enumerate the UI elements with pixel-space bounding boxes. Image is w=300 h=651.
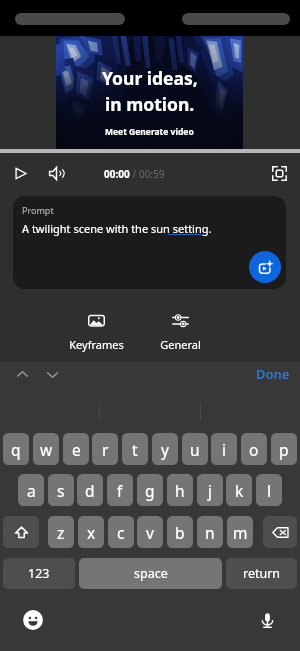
button[interactable]: Prompt [13, 196, 286, 289]
staticText: f [117, 480, 123, 501]
staticText: p [279, 439, 289, 460]
staticText: Keyframes [69, 337, 124, 352]
staticText: n [205, 522, 215, 543]
staticText: space [134, 565, 168, 582]
staticText: Done [256, 365, 290, 383]
button[interactable]: Done [253, 362, 293, 386]
staticText: 123 [28, 565, 50, 582]
staticText: b [175, 522, 185, 543]
button[interactable]: a [18, 474, 44, 506]
button[interactable]: Backspace [263, 516, 297, 548]
staticText: r [102, 439, 109, 460]
staticText: in motion. [105, 92, 195, 116]
staticText: Your ideas, [102, 66, 198, 90]
staticText: l [267, 480, 271, 501]
button[interactable]: Volume [42, 159, 70, 187]
button[interactable]: Emoji [19, 606, 47, 634]
button[interactable]: space [79, 558, 222, 589]
button[interactable]: b [167, 516, 193, 548]
button[interactable]: h [167, 474, 193, 506]
button[interactable]: Fullscreen [265, 159, 293, 187]
staticText: h [175, 480, 185, 501]
staticText: return [243, 565, 281, 582]
staticText: c [117, 522, 125, 543]
button[interactable]: General [143, 306, 218, 354]
staticText: / 00:59 [130, 167, 165, 181]
staticText: d [85, 480, 95, 501]
staticText: General [160, 337, 201, 352]
button[interactable]: Shift [3, 516, 39, 548]
staticText: v [146, 522, 154, 543]
button[interactable]: z [48, 516, 74, 548]
button[interactable]: Play [6, 159, 34, 187]
button[interactable]: w [33, 433, 59, 465]
button[interactable]: k [226, 474, 252, 506]
button[interactable]: c [108, 516, 134, 548]
staticText: q [11, 439, 21, 460]
button[interactable]: q [3, 433, 29, 465]
staticText: Prompt [22, 204, 54, 216]
staticText: o [249, 439, 259, 460]
button[interactable]: m [227, 516, 253, 548]
button[interactable]: Voice input [253, 606, 281, 634]
staticText: g [145, 480, 155, 501]
button[interactable]: Keyframes [56, 306, 137, 354]
staticText: j [208, 480, 212, 501]
button[interactable]: n [197, 516, 223, 548]
staticText: y [161, 439, 169, 460]
button[interactable]: x [78, 516, 104, 548]
button[interactable]: i [211, 433, 237, 465]
button[interactable]: y [152, 433, 178, 465]
staticText: z [57, 522, 65, 543]
button[interactable]: Previous field [8, 362, 36, 386]
staticText: u [190, 439, 200, 460]
button[interactable]: o [241, 433, 267, 465]
button[interactable]: 123 [3, 558, 75, 589]
button[interactable]: d [77, 474, 103, 506]
staticText: m [233, 522, 248, 543]
button[interactable]: j [197, 474, 223, 506]
staticText: k [235, 480, 244, 501]
button[interactable]: s [48, 474, 74, 506]
button[interactable]: r [92, 433, 118, 465]
staticText: 00:00 [104, 167, 130, 181]
button[interactable]: e [63, 433, 89, 465]
staticText: e [72, 439, 81, 460]
staticText: t [132, 439, 138, 460]
staticText: Meet Generate video [105, 126, 194, 138]
staticText: A twilight scene with the sun setting. [22, 221, 212, 236]
button[interactable]: u [182, 433, 208, 465]
button[interactable]: Next field [38, 362, 66, 386]
staticText: x [87, 522, 96, 543]
staticText: s [57, 480, 65, 501]
button[interactable]: return [226, 558, 297, 589]
button[interactable]: p [271, 433, 297, 465]
staticText: w [40, 439, 53, 460]
button[interactable]: f [107, 474, 133, 506]
staticText: i [222, 439, 226, 460]
button[interactable]: v [137, 516, 163, 548]
staticText: a [27, 480, 36, 501]
button[interactable]: l [256, 474, 282, 506]
button[interactable]: t [122, 433, 148, 465]
button[interactable]: Generate video [249, 251, 281, 283]
button[interactable]: g [137, 474, 163, 506]
